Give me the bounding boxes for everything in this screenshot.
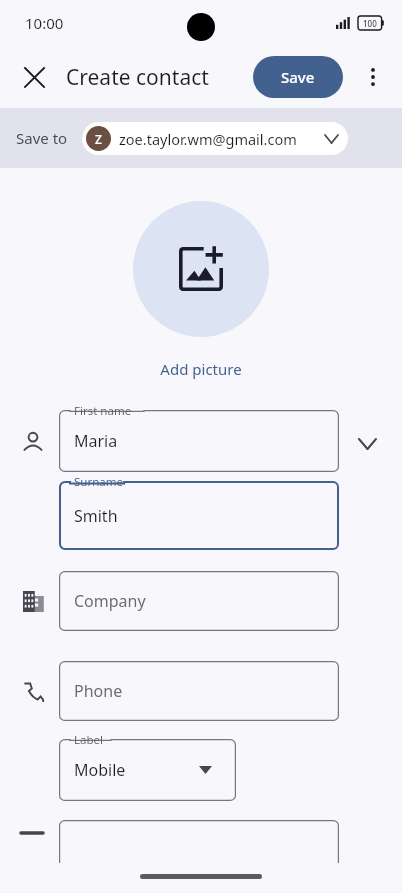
staticText: 10:00	[25, 13, 64, 33]
staticText: Create contact	[66, 63, 209, 92]
staticText: Mobile	[74, 759, 126, 781]
button[interactable]: Add picture	[160, 359, 242, 379]
button[interactable]: Expand name fields	[346, 423, 388, 465]
button[interactable]	[59, 820, 339, 880]
staticText: Save to	[16, 128, 68, 148]
staticText: Label	[74, 732, 104, 748]
button[interactable]: Add picture	[133, 201, 269, 337]
button[interactable]: Surname	[59, 481, 339, 550]
staticText: Company	[74, 590, 146, 612]
staticText: Surname	[74, 474, 123, 490]
button[interactable]: Save	[253, 56, 343, 98]
staticText: First name	[74, 403, 132, 419]
button[interactable]: Phone	[59, 661, 339, 721]
staticText: Maria	[74, 430, 118, 452]
button[interactable]: More options	[352, 56, 394, 98]
button[interactable]: Label	[59, 739, 236, 801]
button[interactable]: Z	[82, 122, 348, 155]
staticText: zoe.taylor.wm@gmail.com	[119, 129, 297, 149]
button[interactable]: Company	[59, 571, 339, 631]
staticText: Phone	[74, 680, 123, 702]
staticText: 100	[363, 18, 377, 29]
staticText: Z	[95, 131, 102, 147]
staticText: Smith	[74, 505, 118, 527]
button[interactable]: Close	[14, 57, 54, 97]
staticText: Save	[281, 67, 315, 87]
button[interactable]: First name	[59, 410, 339, 472]
